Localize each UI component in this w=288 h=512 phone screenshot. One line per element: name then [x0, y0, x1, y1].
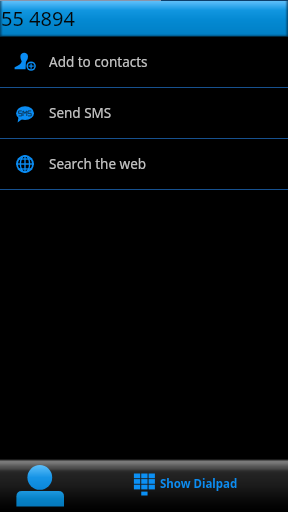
button[interactable]: Contacts: [0, 459, 288, 512]
staticText: 55 4894: [1, 5, 75, 32]
staticText: Add to contacts: [49, 53, 148, 71]
button[interactable]: Add to contacts: [0, 37, 288, 87]
button[interactable]: Send SMS: [0, 88, 288, 138]
button[interactable]: Show Dialpad: [144, 459, 288, 512]
staticText: Show Dialpad: [160, 476, 238, 492]
button[interactable]: Search the web: [0, 139, 288, 189]
staticText: Send SMS: [49, 104, 112, 122]
staticText: Search the web: [49, 155, 147, 173]
